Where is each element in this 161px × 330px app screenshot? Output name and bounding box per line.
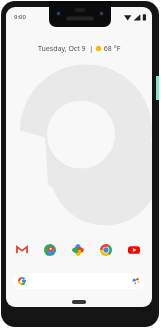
staticText: 68 °F: [102, 44, 121, 54]
button[interactable]: Photos: [70, 242, 86, 258]
staticText: 9:00: [14, 13, 26, 21]
button[interactable]: Gmail: [14, 242, 30, 258]
button[interactable]: Home: [72, 300, 86, 304]
button[interactable]: [13, 273, 145, 289]
button[interactable]: YouTube: [126, 242, 142, 258]
button[interactable]: Maps: [42, 242, 58, 258]
button[interactable]: Chrome: [98, 242, 114, 258]
staticText: Tuesday, Oct 9 |: [38, 44, 95, 54]
